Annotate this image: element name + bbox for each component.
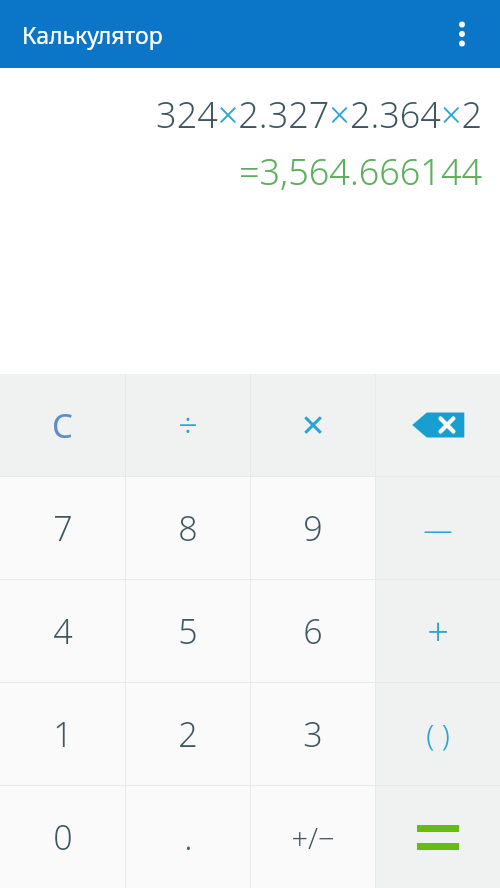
- button[interactable]: Plus: [376, 580, 500, 682]
- staticText: 3: [303, 711, 323, 757]
- staticText: ( ): [426, 715, 450, 754]
- staticText: +: [427, 605, 449, 657]
- button[interactable]: 7: [0, 477, 125, 579]
- staticText: ÷: [178, 402, 198, 448]
- staticText: C: [52, 403, 73, 448]
- button[interactable]: 8: [126, 477, 250, 579]
- staticText: 9: [303, 505, 323, 551]
- staticText: —: [423, 509, 453, 548]
- button[interactable]: 0: [0, 786, 125, 888]
- button[interactable]: 3: [251, 683, 375, 785]
- staticText: +/−: [291, 818, 335, 857]
- button[interactable]: 5: [126, 580, 250, 682]
- staticText: 6: [303, 608, 323, 654]
- staticText: ✕: [300, 408, 326, 443]
- button[interactable]: Plus minus: [251, 786, 375, 888]
- button[interactable]: Divide: [126, 374, 250, 476]
- button[interactable]: Equals: [376, 786, 500, 888]
- button[interactable]: More options: [442, 14, 482, 54]
- button[interactable]: Decimal point: [126, 786, 250, 888]
- staticText: Калькулятор: [22, 19, 163, 50]
- staticText: 8: [178, 505, 198, 551]
- button[interactable]: 9: [251, 477, 375, 579]
- button[interactable]: Clear: [0, 374, 125, 476]
- button[interactable]: 2: [126, 683, 250, 785]
- staticText: 1: [53, 711, 73, 757]
- staticText: 5: [178, 608, 198, 654]
- button[interactable]: Parentheses: [376, 683, 500, 785]
- button[interactable]: 4: [0, 580, 125, 682]
- staticText: 4: [53, 608, 73, 654]
- button[interactable]: 1: [0, 683, 125, 785]
- button[interactable]: Multiply: [251, 374, 375, 476]
- staticText: .: [184, 814, 193, 860]
- staticText: =3,564.666144: [238, 147, 482, 196]
- staticText: 2: [178, 711, 198, 757]
- staticText: 324×2.327×2.364×2: [156, 90, 482, 139]
- button[interactable]: 6: [251, 580, 375, 682]
- button[interactable]: Minus: [376, 477, 500, 579]
- button[interactable]: Backspace: [376, 374, 500, 476]
- staticText: 0: [53, 814, 73, 860]
- staticText: 7: [53, 505, 73, 551]
